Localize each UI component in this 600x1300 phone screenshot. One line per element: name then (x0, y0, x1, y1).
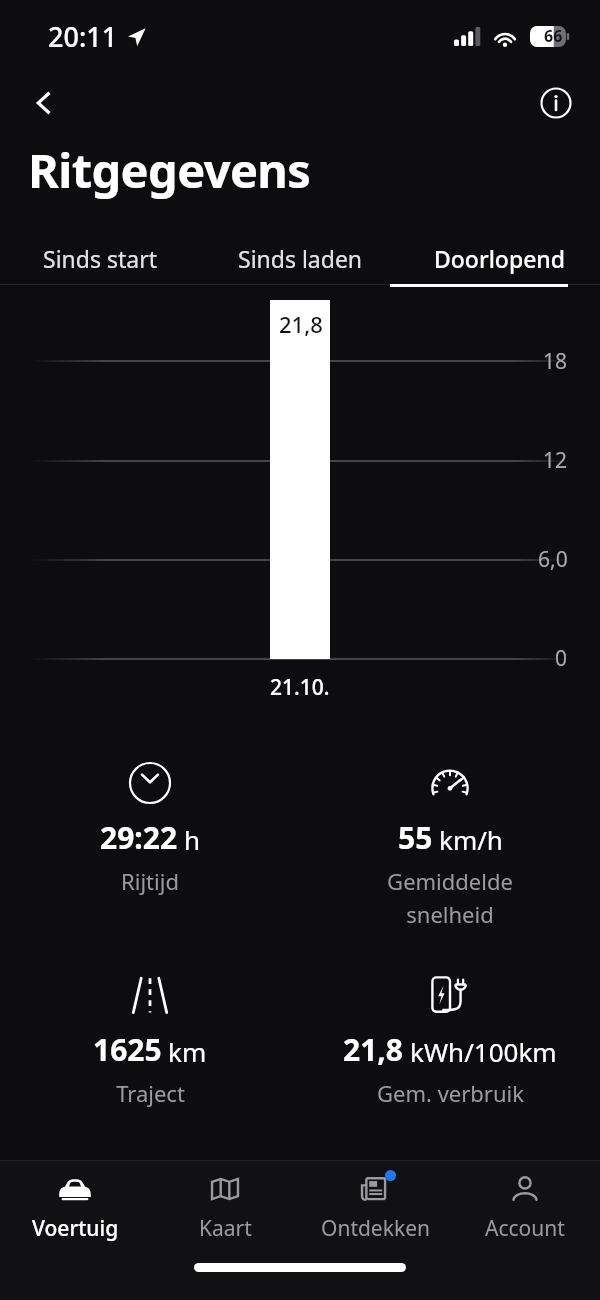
staticText: Ritgegevens (28, 138, 311, 202)
staticText: Doorlopend (434, 243, 566, 274)
staticText: Account (485, 1214, 565, 1243)
staticText: 12 (543, 446, 568, 475)
button[interactable]: Info (534, 81, 578, 125)
staticText: Traject (116, 1078, 185, 1108)
staticText: 0 (555, 644, 568, 673)
button[interactable]: Account (450, 1161, 600, 1253)
button[interactable]: Kaart (150, 1161, 300, 1253)
staticText: 29:22 (100, 817, 178, 858)
button[interactable]: Back (22, 81, 66, 125)
button[interactable]: 55 (300, 761, 600, 929)
button[interactable]: Ontdekken (300, 1161, 450, 1253)
staticText: 21,8 (343, 1029, 404, 1070)
staticText: Gem. verbruik (377, 1078, 524, 1108)
staticText: Ontdekken (321, 1214, 430, 1243)
staticText: 55 (398, 817, 433, 858)
button[interactable]: 1625 (0, 973, 300, 1108)
staticText: kWh/100km (410, 1034, 557, 1069)
button[interactable]: Doorlopend (400, 232, 600, 284)
staticText: 21,8 (279, 309, 323, 339)
staticText: Kaart (199, 1214, 252, 1243)
staticText: km/h (439, 822, 503, 857)
staticText: Sinds laden (238, 243, 363, 274)
staticText: 20:11 (48, 18, 118, 55)
button[interactable]: Sinds start (0, 232, 200, 284)
staticText: Rijtijd (121, 866, 179, 896)
staticText: Gemiddelde snelheid (387, 866, 513, 929)
staticText: km (168, 1034, 207, 1069)
staticText: 6,0 (538, 545, 568, 574)
staticText: h (184, 822, 201, 857)
staticText: Sinds start (43, 243, 157, 274)
button[interactable]: Sinds laden (200, 232, 400, 284)
staticText: 21.10. (270, 673, 330, 702)
staticText: Voertuig (32, 1214, 119, 1243)
staticText: 18 (543, 347, 568, 376)
staticText: 1625 (93, 1029, 162, 1070)
button[interactable]: 21,8 (300, 973, 600, 1108)
button[interactable]: 29:22 (0, 761, 300, 896)
button[interactable]: Voertuig (0, 1161, 150, 1253)
staticText: 66 (544, 25, 563, 47)
